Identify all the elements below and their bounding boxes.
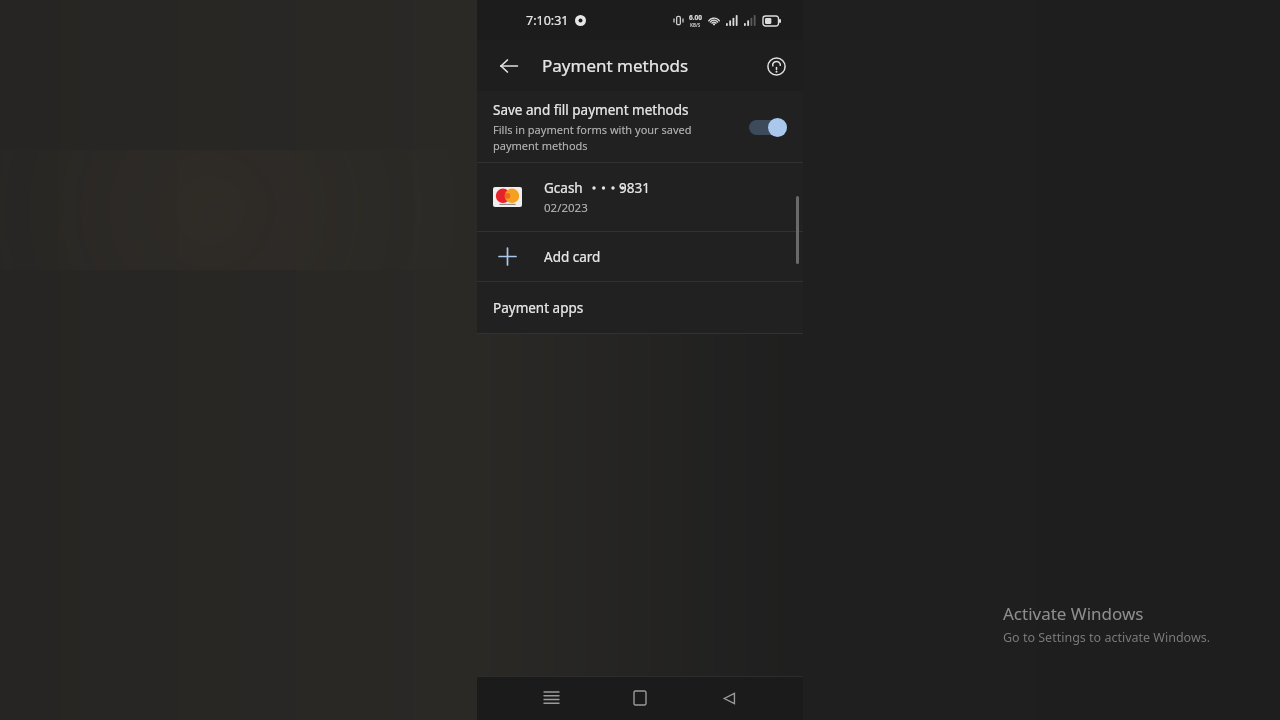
staticText: Fills in payment forms with your saved — [493, 122, 692, 137]
button[interactable]: Gcash — [477, 163, 803, 231]
button[interactable]: Help — [756, 46, 796, 86]
button[interactable]: Back — [489, 46, 529, 86]
button[interactable]: Back — [711, 680, 747, 716]
staticText: Gcash — [544, 179, 583, 197]
staticText: 6.00 — [689, 13, 702, 22]
staticText: Payment methods — [542, 54, 689, 77]
button[interactable]: Home — [622, 680, 658, 716]
staticText: KB/S — [690, 22, 701, 28]
button[interactable]: Save and fill payment methods toggle — [749, 116, 787, 138]
staticText: 02/2023 — [544, 200, 588, 216]
staticText: 9831 — [619, 179, 650, 197]
staticText: Payment apps — [493, 299, 584, 317]
staticText: Go to Settings to activate Windows. — [1003, 629, 1211, 646]
staticText: Activate Windows — [1003, 602, 1144, 625]
button[interactable]: Payment apps — [477, 282, 803, 333]
button[interactable]: Save and fill payment methods — [477, 91, 803, 162]
staticText: 7:10:31 — [526, 12, 569, 29]
button[interactable]: Add card — [477, 232, 803, 281]
staticText: Add card — [544, 248, 601, 266]
staticText: Save and fill payment methods — [493, 101, 689, 119]
staticText: payment methods — [493, 138, 588, 153]
button[interactable]: Recent apps — [533, 680, 569, 716]
